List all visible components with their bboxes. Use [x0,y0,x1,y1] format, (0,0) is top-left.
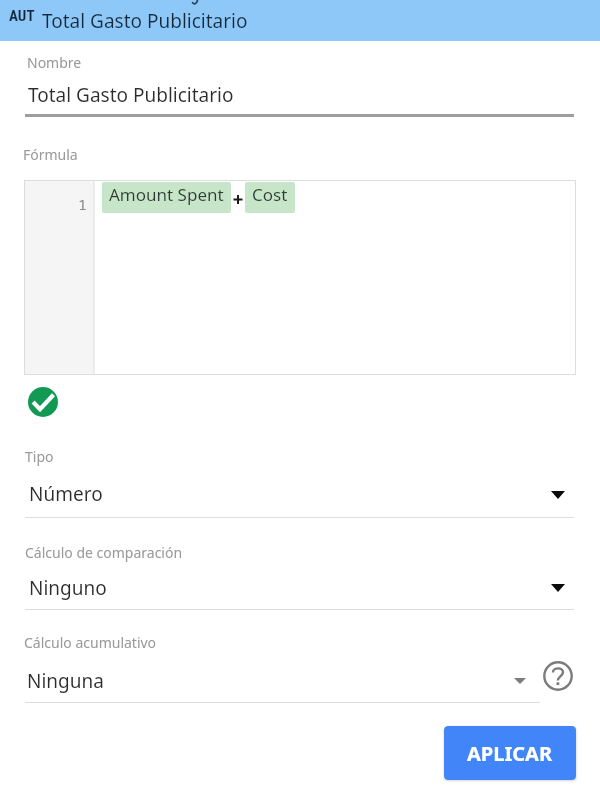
staticText: Fórmula [23,145,78,164]
button[interactable]: Formula is valid [28,387,58,417]
staticText: Nombre [27,53,82,72]
button[interactable]: Help [543,661,573,691]
button[interactable]: APLICAR [444,726,576,780]
staticText: AUT [9,7,35,25]
button[interactable]: Ninguna [25,661,540,703]
staticText: Cost [252,183,288,206]
staticText: Ninguna [27,668,104,694]
staticText: Cálculo acumulativo [24,633,157,652]
staticText: Número [29,481,103,507]
button[interactable]: 1 [24,180,576,375]
staticText: 1 [78,194,88,214]
staticText: Amount Spent [109,183,224,206]
button[interactable]: Ninguno [25,568,574,610]
staticText: Total Gasto Publicitario [28,82,234,108]
staticText: Ninguno [29,575,107,601]
button[interactable]: AUT [0,0,600,41]
button[interactable]: Número [25,475,574,517]
staticText: Tipo [25,447,54,466]
staticText: Cálculo de comparación [25,543,183,562]
staticText: APLICAR [467,740,553,767]
staticText: Total Gasto Publicitario [42,8,248,34]
